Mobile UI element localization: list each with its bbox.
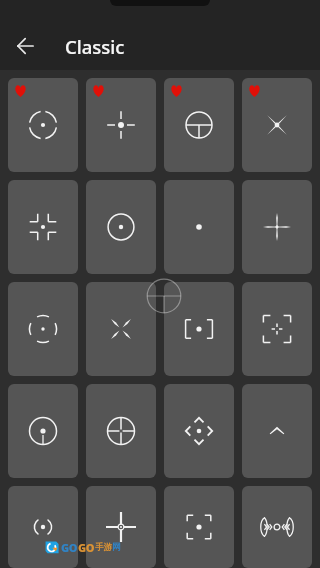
button[interactable]: Crosshair 6 bbox=[86, 180, 156, 274]
button[interactable]: Back bbox=[5, 26, 45, 66]
button[interactable]: Crosshair 10 bbox=[86, 282, 156, 376]
button[interactable]: Crosshair 1 bbox=[8, 78, 78, 172]
button[interactable]: Crosshair 13 bbox=[8, 384, 78, 478]
button[interactable]: Crosshair 16 bbox=[242, 384, 312, 478]
button[interactable]: Crosshair 19 bbox=[164, 486, 234, 568]
button[interactable]: Crosshair 12 bbox=[242, 282, 312, 376]
button[interactable]: Crosshair 11 bbox=[164, 282, 234, 376]
button[interactable]: Crosshair 14 bbox=[86, 384, 156, 478]
button[interactable]: Crosshair 20 bbox=[242, 486, 312, 568]
button[interactable]: Crosshair 15 bbox=[164, 384, 234, 478]
button[interactable]: Crosshair 18 bbox=[86, 486, 156, 568]
staticText: GO bbox=[61, 540, 78, 555]
button[interactable]: Crosshair 17 bbox=[8, 486, 78, 568]
button[interactable]: Crosshair 2 bbox=[86, 78, 156, 172]
staticText: GO bbox=[78, 540, 95, 555]
button[interactable]: Crosshair 9 bbox=[8, 282, 78, 376]
staticText: 手游 bbox=[95, 542, 112, 553]
button[interactable]: Crosshair 3 bbox=[164, 78, 234, 172]
button[interactable]: Crosshair 8 bbox=[242, 180, 312, 274]
button[interactable]: Crosshair 5 bbox=[8, 180, 78, 274]
staticText: Classic bbox=[65, 34, 125, 59]
button[interactable]: Crosshair 4 bbox=[242, 78, 312, 172]
staticText: 网 bbox=[112, 542, 121, 553]
button[interactable]: Crosshair 7 bbox=[164, 180, 234, 274]
